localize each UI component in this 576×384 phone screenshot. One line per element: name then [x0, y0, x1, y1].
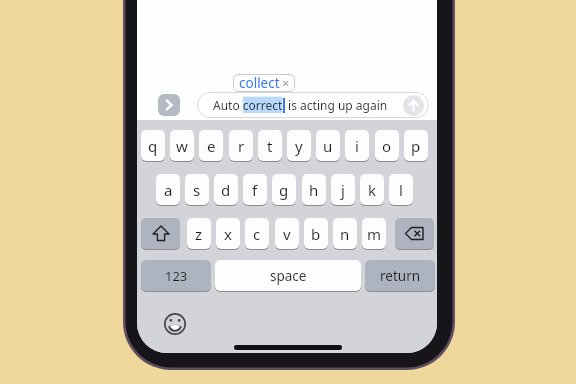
staticText: l	[399, 180, 403, 200]
button[interactable]: k	[360, 174, 384, 205]
staticText: k	[368, 180, 377, 200]
staticText: v	[283, 224, 291, 244]
staticText: a	[164, 180, 173, 200]
button[interactable]: h	[302, 174, 326, 205]
staticText: u	[323, 136, 333, 156]
button[interactable]: x	[216, 218, 240, 249]
staticText: is acting up again	[285, 97, 388, 113]
button[interactable]: m	[362, 218, 386, 249]
staticText: i	[355, 136, 359, 156]
staticText: o	[382, 136, 392, 156]
button[interactable]	[158, 94, 180, 116]
button[interactable]: f	[243, 174, 267, 205]
staticText: h	[309, 180, 319, 200]
staticText: s	[193, 180, 201, 200]
staticText: ×	[282, 74, 290, 92]
button[interactable]: r	[229, 130, 253, 161]
button[interactable]: 123	[141, 260, 211, 291]
button[interactable]: e	[199, 130, 223, 161]
staticText: j	[341, 180, 345, 200]
staticText: return	[380, 267, 421, 285]
staticText: x	[224, 224, 232, 244]
button[interactable]: d	[214, 174, 238, 205]
staticText: p	[411, 136, 421, 156]
staticText: e	[207, 136, 216, 156]
button[interactable]: g	[272, 174, 296, 205]
staticText: collect	[239, 74, 280, 92]
staticText: r	[238, 136, 245, 156]
staticText: c	[253, 224, 261, 244]
button[interactable]: Auto correct	[197, 92, 429, 118]
button[interactable]: i	[345, 130, 369, 161]
button[interactable]: b	[304, 218, 328, 249]
button[interactable]: s	[185, 174, 209, 205]
button[interactable]: p	[404, 130, 428, 161]
staticText: n	[340, 224, 350, 244]
staticText: y	[295, 136, 303, 156]
button[interactable]: return	[365, 260, 435, 291]
staticText: g	[279, 180, 289, 200]
button[interactable]: o	[375, 130, 399, 161]
staticText: b	[311, 224, 321, 244]
staticText: d	[221, 180, 231, 200]
staticText: m	[367, 224, 382, 244]
staticText: space	[270, 267, 307, 285]
button[interactable]: n	[333, 218, 357, 249]
staticText: f	[252, 180, 258, 200]
button[interactable]: q	[141, 130, 165, 161]
staticText: q	[148, 136, 158, 156]
button[interactable]	[403, 95, 424, 116]
button[interactable]: space	[215, 260, 361, 291]
button[interactable]: j	[331, 174, 355, 205]
button[interactable]: w	[170, 130, 194, 161]
button[interactable]: collect	[233, 74, 295, 92]
button[interactable]: l	[389, 174, 413, 205]
staticText: t	[267, 136, 273, 156]
button[interactable]: a	[156, 174, 180, 205]
button[interactable]	[395, 218, 434, 249]
button[interactable]: c	[245, 218, 269, 249]
button[interactable]: u	[316, 130, 340, 161]
staticText: 123	[165, 267, 188, 285]
button[interactable]: z	[187, 218, 211, 249]
button[interactable]: v	[275, 218, 299, 249]
button[interactable]	[141, 218, 180, 249]
button[interactable]: y	[287, 130, 311, 161]
staticText: Auto correct	[213, 97, 283, 113]
staticText: z	[195, 224, 203, 244]
staticText: w	[176, 136, 188, 156]
button[interactable]: t	[258, 130, 282, 161]
